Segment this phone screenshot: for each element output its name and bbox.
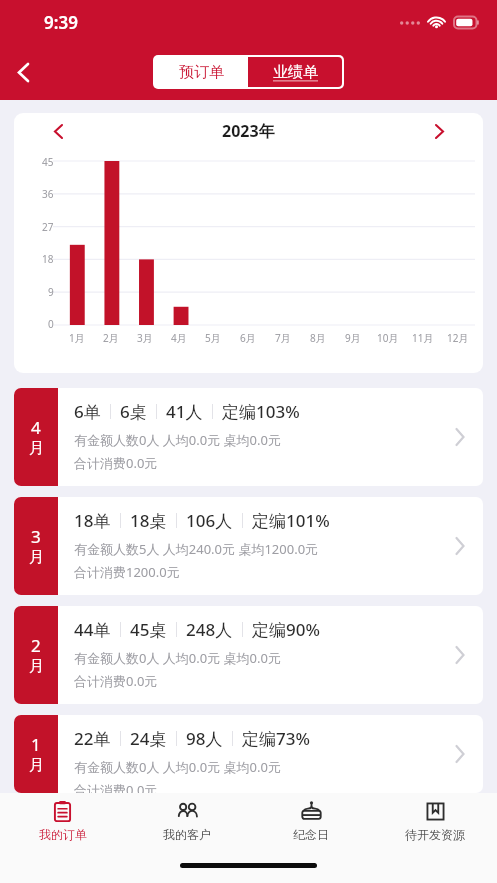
staticText: 纪念日 [293,827,329,842]
staticText: 6月 [240,331,256,345]
staticText: 9:39 [44,11,78,34]
button[interactable]: Back [0,49,46,95]
staticText: 待开发资源 [405,827,465,842]
staticText: 36 [42,187,54,201]
button[interactable]: 预订单 [155,57,248,87]
staticText: 2023年 [222,120,275,142]
staticText: 22单 [74,727,111,750]
staticText: 定编90% [252,618,320,641]
staticText: 9 [48,285,54,299]
staticText: 月 [29,657,44,676]
staticText: 合计消费0.0元 [74,672,158,690]
button[interactable]: 2 [14,606,483,704]
staticText: 24桌 [130,727,167,750]
button[interactable]: Previous year [45,118,71,144]
staticText: 11月 [412,331,434,345]
staticText: 106人 [186,509,233,532]
staticText: 有金额人数0人 人均0.0元 桌均0.0元 [74,431,281,449]
staticText: 9月 [345,331,361,345]
button[interactable]: 业绩单 [248,57,342,87]
staticText: 248人 [186,618,233,641]
staticText: 有金额人数5人 人均240.0元 桌均1200.0元 [74,540,319,558]
staticText: 6单 [74,400,101,423]
staticText: 18 [42,252,54,266]
staticText: 定编103% [222,400,300,423]
button[interactable]: 纪念日 [249,793,373,853]
staticText: 3月 [137,331,153,345]
staticText: 定编101% [252,509,330,532]
staticText: 5月 [205,331,221,345]
staticText: 4 [31,416,41,439]
staticText: 18桌 [130,509,167,532]
staticText: 业绩单 [273,63,318,82]
button[interactable]: 我的订单 [0,793,125,853]
staticText: 月 [29,548,44,567]
staticText: 有金额人数0人 人均0.0元 桌均0.0元 [74,758,281,776]
staticText: 月 [29,439,44,458]
staticText: 合计消费0.0元 [74,454,158,472]
staticText: 98人 [186,727,223,750]
staticText: 我的客户 [163,827,211,842]
button[interactable]: Next year [426,118,452,144]
staticText: 44单 [74,618,111,641]
button[interactable]: 1 [14,715,483,793]
staticText: 7月 [275,331,291,345]
staticText: 我的订单 [39,827,87,842]
button[interactable]: 3 [14,497,483,595]
staticText: 1 [31,733,41,756]
staticText: 45桌 [130,618,167,641]
staticText: 6桌 [120,400,147,423]
staticText: 45 [42,155,54,169]
button[interactable]: 4 [14,388,483,486]
staticText: 12月 [447,331,469,345]
staticText: 合计消费1200.0元 [74,563,180,581]
staticText: 0 [48,317,54,331]
staticText: 月 [29,756,44,775]
staticText: 3 [31,525,41,548]
staticText: 4月 [171,331,187,345]
staticText: 合计消费0.0元 [74,781,158,793]
staticText: 10月 [377,331,399,345]
staticText: 1月 [69,331,85,345]
staticText: 预订单 [179,63,224,82]
staticText: 有金额人数0人 人均0.0元 桌均0.0元 [74,649,281,667]
staticText: 18单 [74,509,111,532]
staticText: 定编73% [242,727,310,750]
staticText: 41人 [166,400,203,423]
button[interactable]: 待开发资源 [373,793,497,853]
staticText: 2 [31,634,41,657]
staticText: 27 [42,220,54,234]
staticText: 2月 [103,331,119,345]
button[interactable]: 我的客户 [125,793,249,853]
staticText: 8月 [310,331,326,345]
